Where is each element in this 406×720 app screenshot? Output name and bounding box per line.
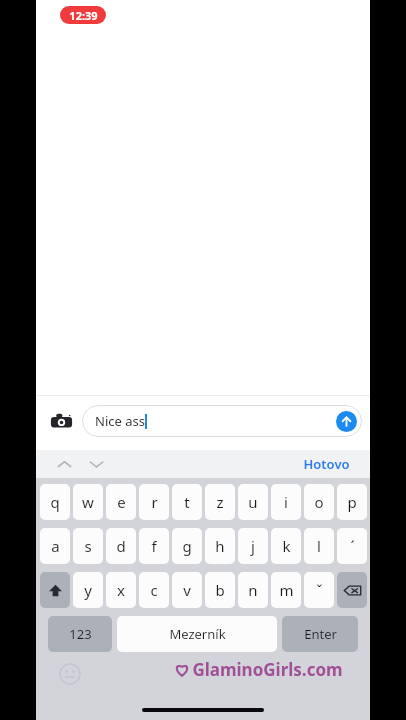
button[interactable]: u (238, 484, 268, 520)
staticText: l (317, 536, 321, 556)
button[interactable]: z (205, 484, 235, 520)
button[interactable]: s (73, 528, 103, 564)
button[interactable]: t (172, 484, 202, 520)
staticText: a (51, 536, 60, 556)
staticText: GlaminoGirls.com (192, 658, 343, 681)
button[interactable]: x (106, 572, 136, 608)
staticText: m (279, 580, 294, 600)
button[interactable]: q (40, 484, 70, 520)
staticText: d (116, 536, 126, 556)
button[interactable]: h (205, 528, 235, 564)
staticText: j (251, 536, 255, 556)
staticText: g (182, 536, 192, 556)
staticText: 123 (69, 625, 92, 643)
staticText: c (150, 580, 158, 600)
staticText: h (215, 536, 225, 556)
button[interactable]: m (271, 572, 301, 608)
staticText: s (84, 536, 92, 556)
button[interactable]: ˇ (304, 572, 334, 608)
staticText: e (117, 492, 126, 512)
staticText: f (151, 536, 157, 556)
staticText: Enter (304, 625, 337, 643)
button[interactable]: w (73, 484, 103, 520)
button[interactable]: e (106, 484, 136, 520)
staticText: ´ (350, 536, 355, 556)
staticText: b (215, 580, 225, 600)
staticText: u (248, 492, 258, 512)
button[interactable]: g (172, 528, 202, 564)
button[interactable]: Backspace (337, 572, 367, 608)
staticText: n (248, 580, 258, 600)
button[interactable]: Camera (42, 402, 80, 440)
staticText: Nice ass (95, 412, 145, 430)
button[interactable]: d (106, 528, 136, 564)
staticText: y (84, 580, 92, 600)
button[interactable]: 123 (48, 616, 112, 652)
staticText: x (117, 580, 125, 600)
staticText: Mezerník (169, 625, 226, 643)
button[interactable]: j (238, 528, 268, 564)
button[interactable]: Hotovo (299, 451, 354, 477)
button[interactable]: Emoji (58, 662, 82, 686)
button[interactable]: n (238, 572, 268, 608)
button[interactable]: b (205, 572, 235, 608)
button[interactable]: a (40, 528, 70, 564)
button[interactable]: v (172, 572, 202, 608)
staticText: v (183, 580, 191, 600)
button[interactable]: Shift (40, 572, 70, 608)
button[interactable]: p (337, 484, 367, 520)
staticText: ˇ (316, 580, 323, 600)
button[interactable]: r (139, 484, 169, 520)
staticText: t (184, 492, 190, 512)
staticText: o (314, 492, 324, 512)
button[interactable]: l (304, 528, 334, 564)
button[interactable]: ´ (337, 528, 367, 564)
button[interactable]: Enter (282, 616, 358, 652)
staticText: k (282, 536, 291, 556)
staticText: 12:39 (69, 8, 98, 23)
staticText: i (284, 492, 288, 512)
button[interactable]: Next field (84, 452, 108, 476)
button[interactable]: Nice ass (82, 405, 362, 437)
staticText: q (50, 492, 60, 512)
staticText: r (151, 492, 158, 512)
button[interactable]: f (139, 528, 169, 564)
button[interactable]: Mezerník (117, 616, 277, 652)
button[interactable]: Send (336, 411, 357, 432)
staticText: p (347, 492, 357, 512)
staticText: z (216, 492, 224, 512)
button[interactable]: o (304, 484, 334, 520)
button[interactable]: i (271, 484, 301, 520)
button[interactable]: k (271, 528, 301, 564)
staticText: w (82, 492, 94, 512)
staticText: Hotovo (303, 455, 350, 473)
button[interactable]: y (73, 572, 103, 608)
button[interactable]: Previous field (52, 452, 76, 476)
button[interactable]: c (139, 572, 169, 608)
